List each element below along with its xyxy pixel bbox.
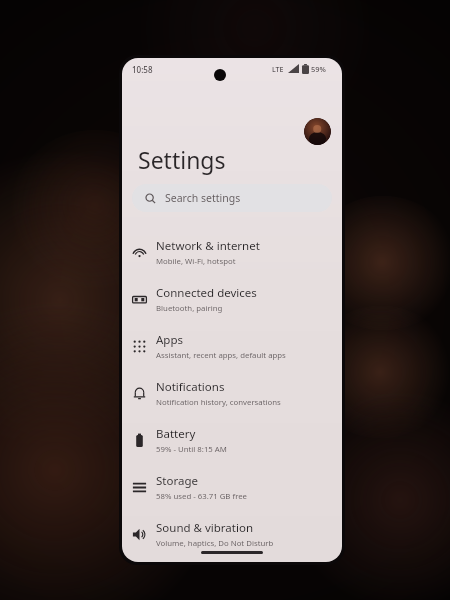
- staticText: Notification history, conversations: [156, 397, 281, 408]
- staticText: Search settings: [165, 191, 241, 205]
- staticText: 59%: [311, 64, 326, 74]
- staticText: 10:58: [132, 64, 153, 75]
- staticText: Notifications: [156, 379, 225, 395]
- staticText: Volume, haptics, Do Not Disturb: [156, 538, 274, 549]
- button[interactable]: Apps: [122, 324, 342, 368]
- staticText: Mobile, Wi-Fi, hotspot: [156, 256, 236, 267]
- button[interactable]: Storage: [122, 465, 342, 509]
- button[interactable]: Notifications: [122, 371, 342, 415]
- staticText: Connected devices: [156, 285, 257, 301]
- button[interactable]: Network & internet: [122, 230, 342, 274]
- staticText: 58% used - 63.71 GB free: [156, 491, 248, 502]
- staticText: Bluetooth, pairing: [156, 303, 223, 314]
- staticText: Battery: [156, 426, 196, 442]
- staticText: Apps: [156, 332, 184, 348]
- button[interactable]: Battery: [122, 418, 342, 462]
- button[interactable]: Search settings: [132, 184, 332, 212]
- staticText: Storage: [156, 473, 198, 489]
- staticText: 59% - Until 8:15 AM: [156, 444, 227, 455]
- button[interactable]: Account: [304, 118, 331, 145]
- button[interactable]: Sound & vibration: [122, 512, 342, 556]
- staticText: Settings: [138, 144, 226, 175]
- staticText: LTE: [272, 65, 284, 75]
- staticText: Assistant, recent apps, default apps: [156, 350, 286, 361]
- staticText: Sound & vibration: [156, 520, 253, 536]
- staticText: Network & internet: [156, 238, 260, 254]
- button[interactable]: Connected devices: [122, 277, 342, 321]
